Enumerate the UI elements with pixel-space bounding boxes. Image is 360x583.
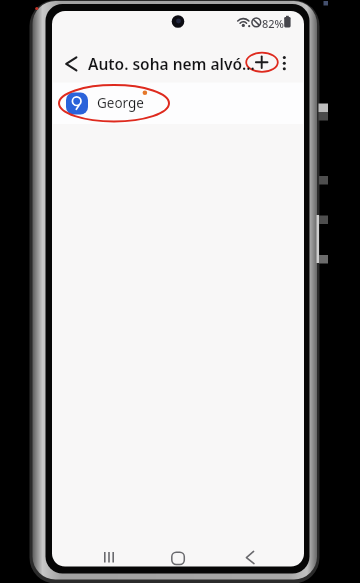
- staticText: George: [97, 94, 144, 112]
- button[interactable]: [274, 48, 295, 77]
- staticText: Auto. soha nem alvó...: [88, 53, 255, 74]
- button[interactable]: [58, 50, 86, 78]
- staticText: 82%: [262, 16, 284, 28]
- button[interactable]: [157, 543, 199, 571]
- button[interactable]: [246, 48, 278, 77]
- button[interactable]: [52, 84, 304, 123]
- button[interactable]: [88, 543, 130, 571]
- button[interactable]: [229, 543, 271, 571]
